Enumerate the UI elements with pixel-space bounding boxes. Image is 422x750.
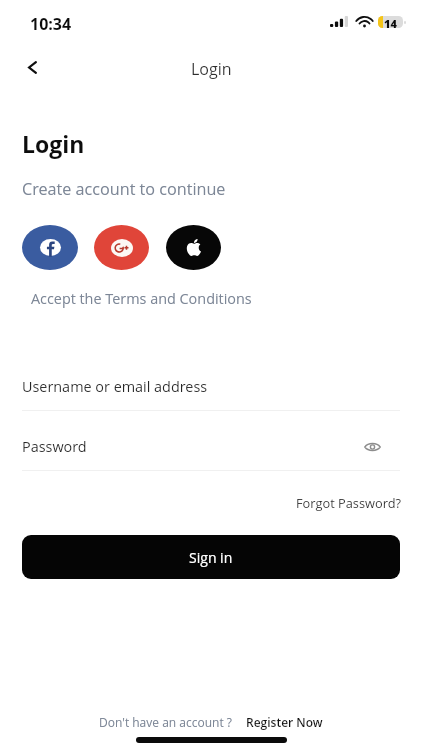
button[interactable]: Show password — [357, 435, 387, 459]
staticText: Create account to continue — [22, 178, 226, 200]
button[interactable]: Back — [15, 50, 49, 84]
staticText: 10:34 — [30, 13, 72, 35]
staticText: 14 — [384, 16, 397, 28]
button[interactable]: Sign in with Google — [94, 225, 149, 270]
button[interactable]: Forgot Password? — [296, 494, 402, 511]
staticText: Sign in — [189, 548, 233, 567]
staticText: Username or email address — [22, 377, 208, 397]
staticText: Password — [22, 437, 87, 457]
button[interactable]: Sign in — [22, 535, 400, 579]
button[interactable]: Sign in with Apple — [166, 225, 221, 270]
button[interactable]: Sign in with Facebook — [22, 225, 78, 270]
button[interactable]: Register Now — [246, 714, 323, 730]
staticText: Login — [191, 58, 232, 80]
staticText: Login — [22, 128, 85, 159]
staticText: Don't have an account ? — [99, 714, 232, 730]
button[interactable]: Accept the Terms and Conditions — [31, 289, 252, 309]
